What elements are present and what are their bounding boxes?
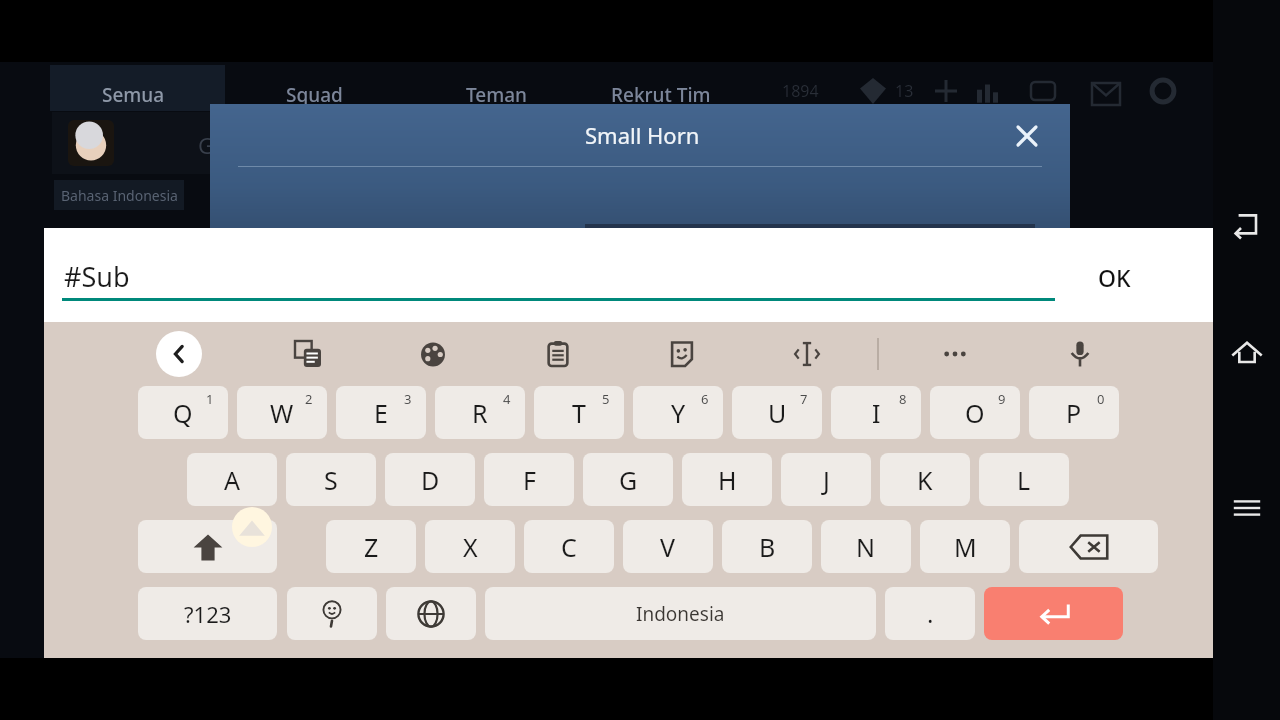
button[interactable]: Text editing [781, 328, 833, 380]
staticText: G [198, 130, 215, 160]
staticText: 1894 [782, 80, 819, 102]
button[interactable]: Rekrut Tim [605, 76, 717, 114]
staticText: W [270, 396, 294, 430]
button[interactable]: . [885, 587, 975, 640]
staticText: J [823, 463, 830, 497]
staticText: 1 [206, 390, 214, 408]
staticText: Bahasa Indonesia [61, 186, 178, 205]
staticText: D [421, 463, 440, 497]
button[interactable]: J [781, 453, 871, 506]
button[interactable]: Clipboard [532, 328, 584, 380]
staticText: B [759, 530, 776, 564]
staticText: A [224, 463, 240, 497]
staticText: 5 [602, 390, 610, 408]
button[interactable]: More options [929, 328, 981, 380]
staticText: L [1017, 463, 1031, 497]
staticText: Q [173, 396, 193, 430]
staticText: 8 [899, 390, 907, 408]
button[interactable]: Back [156, 331, 202, 377]
button[interactable]: C [524, 520, 614, 573]
staticText: M [954, 530, 977, 564]
button[interactable]: Back [1213, 190, 1280, 260]
staticText: Small Horn [585, 120, 700, 150]
staticText: 6 [701, 390, 709, 408]
staticText: S [324, 463, 338, 497]
staticText: 9 [998, 390, 1006, 408]
button[interactable]: Change language [386, 587, 476, 640]
button[interactable]: I [831, 386, 921, 439]
button[interactable]: Semua [96, 76, 171, 114]
staticText: Squad [286, 82, 343, 108]
button[interactable]: V [623, 520, 713, 573]
staticText: OK [1098, 262, 1131, 293]
button[interactable]: S [286, 453, 376, 506]
staticText: Rekrut Tim [611, 82, 711, 108]
staticText: . [927, 597, 934, 630]
staticText: 0 [1097, 390, 1105, 408]
staticText: 4 [503, 390, 511, 408]
button[interactable]: L [979, 453, 1069, 506]
button[interactable]: Teman [460, 76, 534, 114]
button[interactable]: O [930, 386, 1020, 439]
button[interactable]: Close [1005, 114, 1049, 158]
staticText: H [718, 463, 737, 497]
button[interactable]: F [484, 453, 574, 506]
button[interactable]: Z [326, 520, 416, 573]
button[interactable]: W [237, 386, 327, 439]
button[interactable]: M [920, 520, 1010, 573]
staticText: 7 [800, 390, 808, 408]
button[interactable]: Stickers [656, 328, 708, 380]
button[interactable]: T [534, 386, 624, 439]
button[interactable]: Squad [280, 76, 349, 114]
button[interactable]: E [336, 386, 426, 439]
button[interactable]: R [435, 386, 525, 439]
staticText: ?123 [184, 599, 232, 629]
button[interactable]: G [583, 453, 673, 506]
staticText: X [463, 530, 478, 564]
staticText: F [523, 463, 536, 497]
staticText: K [917, 463, 933, 497]
button[interactable]: Bahasa Indonesia [54, 180, 184, 210]
button[interactable]: P [1029, 386, 1119, 439]
staticText: U [768, 396, 787, 430]
button[interactable] [50, 65, 225, 111]
staticText: Z [364, 530, 379, 564]
staticText: R [472, 396, 488, 430]
staticText: V [660, 530, 676, 564]
button[interactable]: ?123 [138, 587, 277, 640]
button[interactable]: Themes [407, 328, 459, 380]
button[interactable]: Q [138, 386, 228, 439]
staticText: 13 [895, 80, 914, 102]
button[interactable]: Translate [282, 328, 334, 380]
button[interactable]: Indonesia [485, 587, 876, 640]
staticText: P [1066, 396, 1082, 430]
button[interactable]: N [821, 520, 911, 573]
button[interactable]: D [385, 453, 475, 506]
staticText: I [872, 396, 881, 430]
button[interactable]: H [682, 453, 772, 506]
button[interactable]: Menu [1213, 473, 1280, 543]
staticText: 3 [404, 390, 412, 408]
button[interactable]: A [187, 453, 277, 506]
button[interactable]: Home [1213, 318, 1280, 388]
button[interactable]: OK [1084, 256, 1145, 299]
staticText: O [965, 396, 985, 430]
button[interactable]: Backspace [1019, 520, 1158, 573]
button[interactable]: Voice input [1054, 328, 1106, 380]
staticText: Y [671, 396, 686, 430]
staticText: #Sub [64, 258, 130, 295]
button[interactable]: U [732, 386, 822, 439]
button[interactable]: B [722, 520, 812, 573]
button[interactable]: K [880, 453, 970, 506]
button[interactable]: Enter [984, 587, 1123, 640]
button[interactable] [52, 112, 382, 174]
button[interactable]: Y [633, 386, 723, 439]
button[interactable]: Shift [138, 520, 277, 573]
staticText: 2 [305, 390, 313, 408]
button[interactable]: Emoji and comma [287, 587, 377, 640]
staticText: C [561, 530, 577, 564]
staticText: Indonesia [636, 601, 725, 627]
staticText: E [374, 396, 388, 430]
button[interactable]: X [425, 520, 515, 573]
